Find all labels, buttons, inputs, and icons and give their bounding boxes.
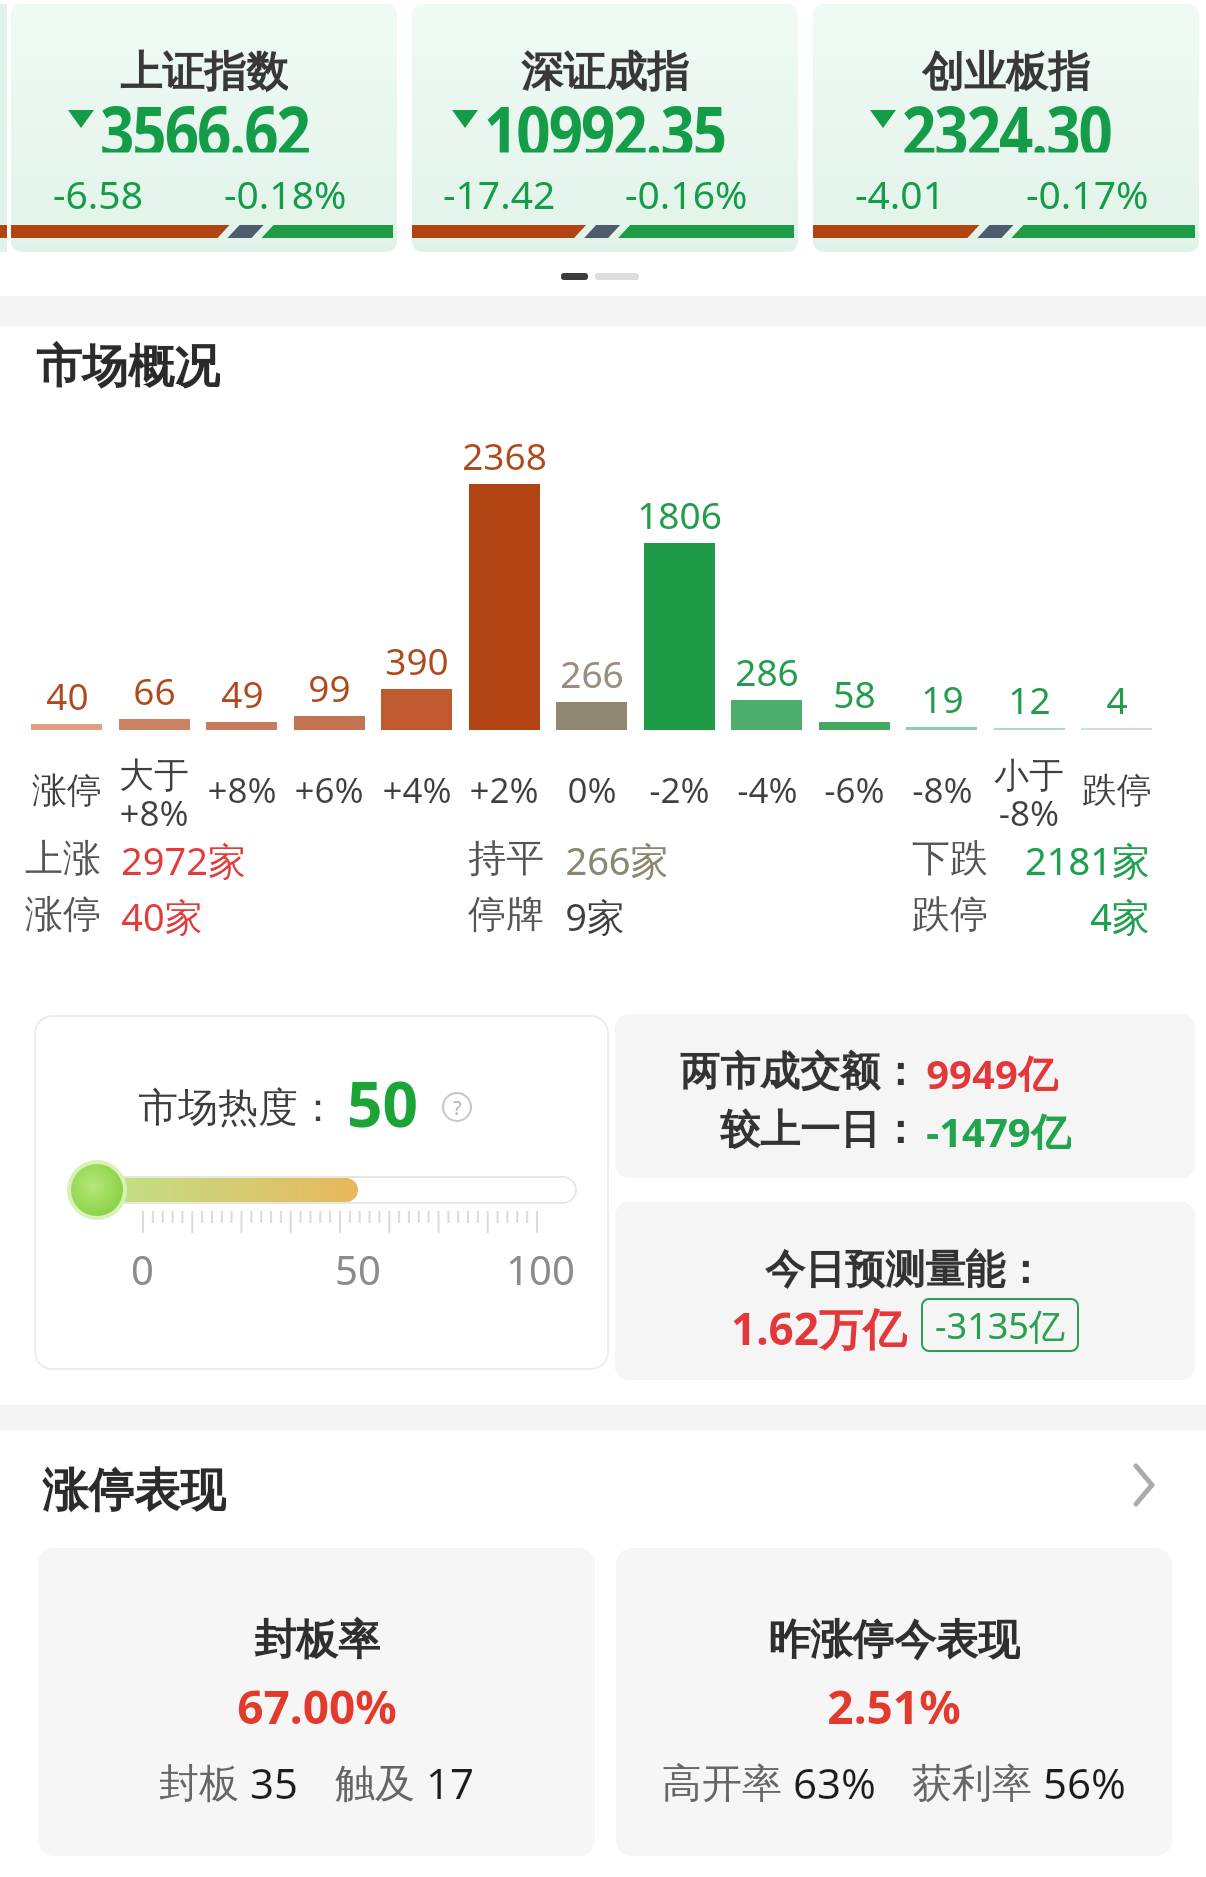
staticText: 触及 — [335, 1754, 426, 1804]
staticText: 10992.35 — [484, 83, 726, 152]
button[interactable]: 涨停表现 — [0, 1440, 1206, 1540]
staticText: +8% — [207, 766, 277, 814]
button[interactable]: 两市成交额： — [615, 1014, 1195, 1178]
staticText: -6.58 — [53, 167, 143, 211]
staticText: 市场概况 — [36, 338, 220, 394]
staticText: 停牌 — [468, 890, 544, 936]
staticText: 17 — [426, 1754, 475, 1804]
staticText: +6% — [294, 766, 364, 814]
button[interactable]: 市场热度： — [34, 1015, 609, 1370]
button[interactable]: 今日预测量能： — [615, 1202, 1195, 1380]
staticText: 两市成交额： — [680, 1046, 920, 1092]
button[interactable]: 昨涨停今表现 — [616, 1548, 1172, 1856]
staticText: 2181家 — [1025, 834, 1150, 880]
staticText: 100 — [506, 1242, 575, 1290]
staticText: 56% — [1043, 1754, 1126, 1804]
staticText: 4家 — [1090, 890, 1150, 936]
button[interactable]: 封板率 — [38, 1548, 595, 1856]
staticText: -0.17% — [1026, 167, 1149, 211]
staticText: 35 — [250, 1754, 299, 1804]
staticText: 67.00% — [237, 1675, 397, 1725]
staticText: 99 — [308, 662, 351, 708]
button[interactable]: 深证成指 — [412, 4, 798, 252]
staticText: -1479亿 — [926, 1104, 1071, 1150]
staticText: 上证指数 — [120, 46, 288, 94]
staticText: 市场热度： — [138, 1082, 338, 1132]
staticText: -17.42 — [443, 167, 556, 211]
staticText: 1806 — [637, 489, 722, 535]
staticText: 2.51% — [827, 1675, 961, 1725]
staticText: -4% — [737, 766, 798, 814]
staticText: 9家 — [565, 890, 625, 936]
staticText: -0.18% — [224, 167, 347, 211]
button[interactable]: 上证指数 — [11, 4, 397, 252]
staticText: ? — [453, 1094, 462, 1121]
staticText: 50 — [335, 1242, 381, 1290]
staticText: 涨停 — [25, 890, 101, 936]
staticText: -4.01 — [855, 167, 945, 211]
staticText: 今日预测量能： — [765, 1244, 1045, 1290]
staticText: 0% — [567, 766, 617, 814]
staticText: 获利率 — [912, 1754, 1043, 1804]
staticText: 9949亿 — [926, 1046, 1058, 1092]
staticText: 封板率 — [254, 1614, 380, 1662]
staticText: 昨涨停今表现 — [768, 1614, 1020, 1662]
staticText: -6% — [824, 766, 885, 814]
staticText: 66 — [133, 665, 176, 711]
staticText: 40家 — [121, 890, 203, 936]
staticText: +4% — [382, 766, 452, 814]
staticText: -0.16% — [625, 167, 748, 211]
button[interactable]: 创业板指 — [813, 4, 1199, 252]
staticText: 高开率 — [662, 1754, 793, 1804]
staticText: 持平 — [468, 834, 544, 880]
staticText: 小于 -8% — [994, 753, 1064, 827]
staticText: 390 — [385, 635, 449, 681]
staticText: -3135亿 — [935, 1301, 1065, 1349]
staticText: 2368 — [462, 430, 547, 476]
staticText: 12 — [1008, 674, 1051, 720]
staticText: 较上一日： — [720, 1104, 920, 1150]
staticText: 4 — [1106, 674, 1128, 720]
staticText: 63% — [793, 1754, 876, 1804]
staticText: 1.62万亿 — [731, 1298, 907, 1352]
staticText: 涨停 — [32, 768, 102, 812]
staticText: +2% — [469, 766, 539, 814]
staticText: 跌停 — [912, 890, 988, 936]
staticText: 58 — [833, 668, 876, 714]
staticText: 266 — [560, 648, 624, 694]
staticText: 49 — [221, 668, 264, 714]
staticText: 2324.30 — [902, 83, 1111, 152]
staticText: 上涨 — [25, 834, 101, 880]
staticText: 19 — [921, 673, 964, 719]
staticText: 0 — [131, 1242, 154, 1290]
staticText: 50 — [347, 1061, 418, 1145]
staticText: 下跌 — [912, 834, 988, 880]
staticText: 40 — [46, 670, 89, 716]
staticText: 大于 +8% — [119, 753, 189, 827]
staticText: 创业板指 — [922, 46, 1090, 94]
staticText: 跌停 — [1082, 768, 1152, 812]
staticText: -8% — [912, 766, 973, 814]
staticText: 封板 — [159, 1754, 250, 1804]
staticText: 2972家 — [121, 834, 246, 880]
staticText: 3566.62 — [100, 83, 309, 152]
staticText: 涨停表现 — [42, 1462, 226, 1518]
staticText: -2% — [649, 766, 710, 814]
staticText: 286 — [735, 646, 799, 692]
staticText: 深证成指 — [521, 46, 689, 94]
staticText: 266家 — [565, 834, 669, 880]
